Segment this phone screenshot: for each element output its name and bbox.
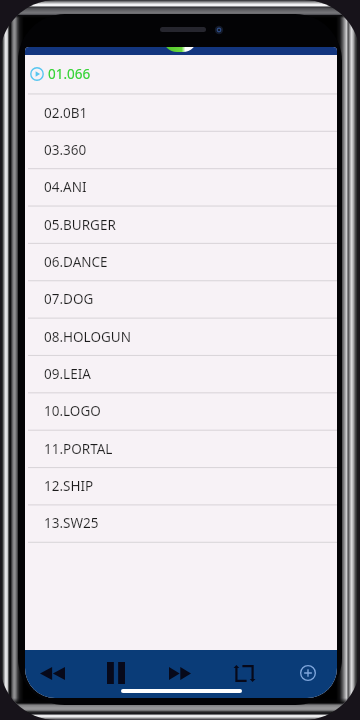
button[interactable]: 04.ANI [25, 169, 337, 205]
button[interactable]: Add [280, 651, 336, 695]
button[interactable]: 12.SHIP [25, 468, 337, 504]
button[interactable]: 05.BURGER [25, 207, 337, 243]
staticText: 05.BURGER [44, 216, 116, 234]
staticText: 12.SHIP [44, 477, 94, 495]
button[interactable]: 11.PORTAL [25, 431, 337, 467]
button[interactable]: 08.HOLOGUN [25, 319, 337, 355]
button[interactable]: Fast forward [152, 651, 208, 695]
button[interactable]: 09.LEIA [25, 356, 337, 392]
button[interactable]: Pause [88, 651, 144, 695]
button[interactable]: 10.LOGO [25, 393, 337, 429]
button[interactable]: 13.SW25 [25, 505, 337, 541]
button[interactable]: Repeat [216, 651, 272, 695]
staticText: 08.HOLOGUN [44, 328, 131, 346]
staticText: 13.SW25 [44, 514, 99, 532]
button[interactable]: Rewind [25, 651, 80, 695]
staticText: 09.LEIA [44, 365, 91, 383]
staticText: 07.DOG [44, 290, 94, 308]
staticText: 04.ANI [44, 178, 87, 196]
staticText: 11.PORTAL [44, 440, 113, 458]
staticText: 03.360 [44, 141, 87, 159]
button[interactable]: 03.360 [25, 132, 337, 168]
staticText: 02.0B1 [44, 104, 88, 122]
staticText: 10.LOGO [44, 402, 101, 420]
staticText: 01.066 [48, 65, 91, 83]
button[interactable]: 01.066 [25, 55, 337, 93]
button[interactable]: 02.0B1 [25, 95, 337, 131]
staticText: 06.DANCE [44, 253, 108, 271]
button[interactable]: 07.DOG [25, 281, 337, 317]
button[interactable]: 06.DANCE [25, 244, 337, 280]
